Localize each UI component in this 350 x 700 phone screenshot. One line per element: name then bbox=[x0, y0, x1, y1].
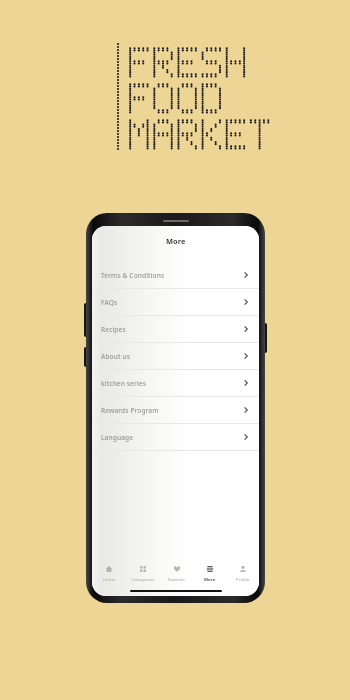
staticText: Favorite bbox=[168, 577, 185, 583]
staticText: kitchen series bbox=[101, 379, 241, 388]
staticText: About us bbox=[101, 352, 241, 361]
staticText: More bbox=[204, 577, 216, 583]
staticText: Rewards Program bbox=[101, 406, 241, 415]
button[interactable]: Rewards Program bbox=[92, 397, 259, 423]
button[interactable]: kitchen series bbox=[92, 370, 259, 396]
staticText: Home bbox=[103, 577, 116, 583]
button[interactable]: Home bbox=[92, 559, 126, 587]
staticText: Categories bbox=[132, 577, 155, 583]
button[interactable]: FAQs bbox=[92, 289, 259, 315]
button[interactable]: Profile bbox=[226, 559, 259, 587]
button[interactable]: Favorite bbox=[160, 559, 193, 587]
button[interactable]: More bbox=[193, 559, 226, 587]
button[interactable]: Language bbox=[92, 424, 259, 450]
button[interactable]: Categories bbox=[126, 559, 160, 587]
staticText: Language bbox=[101, 433, 241, 442]
staticText: Profile bbox=[236, 577, 250, 583]
button[interactable]: Recipes bbox=[92, 316, 259, 342]
staticText: Recipes bbox=[101, 325, 241, 334]
button[interactable]: Terms & Conditions bbox=[92, 262, 259, 288]
staticText: Terms & Conditions bbox=[101, 271, 241, 280]
staticText: More bbox=[166, 236, 186, 246]
staticText: FAQs bbox=[101, 298, 241, 307]
button[interactable]: About us bbox=[92, 343, 259, 369]
